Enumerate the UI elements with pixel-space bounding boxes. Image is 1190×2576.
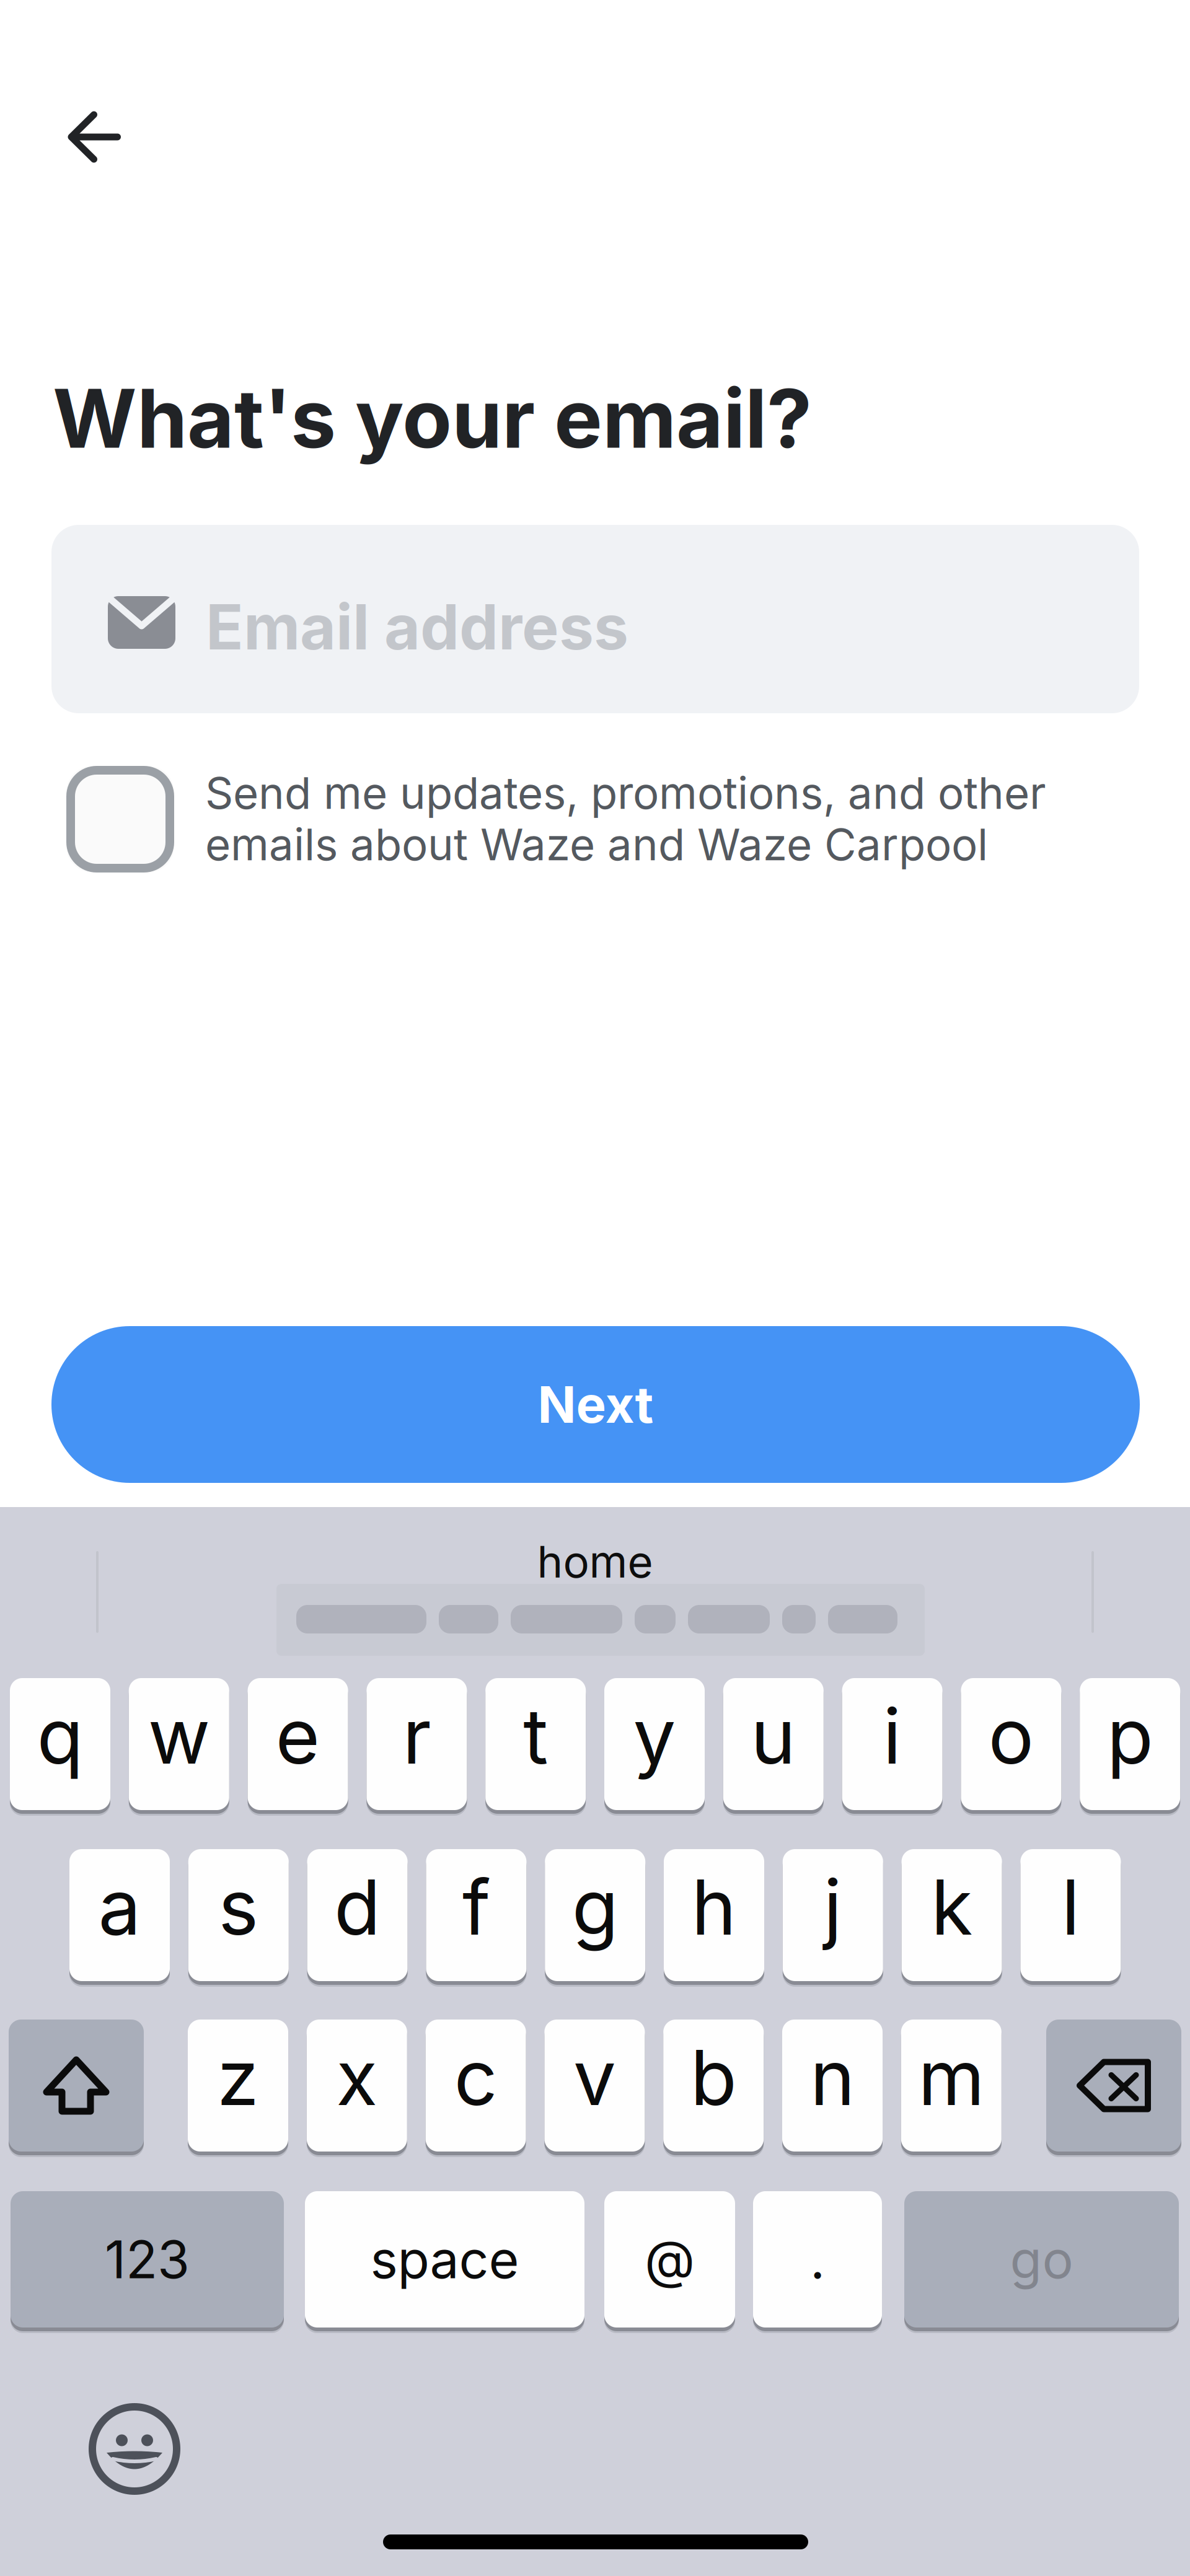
staticText: y [633,1690,676,1782]
button[interactable]: 123 [11,2191,284,2333]
button[interactable]: space [305,2191,584,2333]
staticText: a [98,1861,141,1953]
button[interactable]: z [188,2020,288,2157]
button[interactable]: Next [51,1326,1140,1483]
button[interactable]: e [248,1678,348,1816]
button[interactable]: r [367,1678,467,1816]
button[interactable]: a [69,1849,170,1987]
button[interactable]: l [1020,1849,1121,1987]
staticText: i [883,1690,902,1782]
button[interactable]: home [440,1524,750,1599]
staticText: g [572,1861,618,1953]
staticText: z [217,2031,259,2123]
button[interactable]: Shift [9,2020,144,2157]
staticText: home [537,1535,653,1588]
button[interactable]: n [782,2020,883,2157]
button[interactable]: i [842,1678,942,1816]
staticText: k [931,1861,973,1953]
staticText: m [918,2031,984,2123]
button[interactable]: p [1080,1678,1180,1816]
staticText: space [370,2228,519,2291]
staticText: l [1061,1861,1080,1953]
button[interactable]: w [129,1678,229,1816]
staticText: v [573,2031,616,2123]
button[interactable]: go [904,2191,1179,2333]
staticText: j [824,1861,842,1953]
button[interactable]: b [663,2020,764,2157]
button[interactable]: y [604,1678,705,1816]
button[interactable]: v [544,2020,645,2157]
button[interactable]: . [753,2191,882,2333]
staticText: h [691,1861,737,1953]
staticText: Send me updates, promotions, and other [205,766,1046,819]
staticText: p [1107,1690,1153,1782]
staticText: 123 [105,2228,190,2291]
staticText: n [810,2031,855,2123]
staticText: Email address [206,589,628,664]
staticText: go [1010,2228,1073,2291]
button[interactable]: j [783,1849,883,1987]
button[interactable]: Delete [1046,2020,1181,2157]
button[interactable]: s [188,1849,289,1987]
button[interactable]: u [723,1678,824,1816]
staticText: What's your email? [53,369,812,467]
staticText: c [454,2031,497,2123]
button[interactable]: o [961,1678,1061,1816]
button[interactable]: q [10,1678,110,1816]
staticText: b [690,2031,737,2123]
staticText: w [148,1690,210,1782]
staticText: s [218,1861,259,1953]
button[interactable]: k [902,1849,1002,1987]
button[interactable]: m [901,2020,1001,2157]
staticText: r [402,1690,431,1782]
staticText: d [334,1861,381,1953]
button[interactable]: @ [604,2191,735,2333]
staticText: . [810,2228,825,2291]
button[interactable]: g [545,1849,645,1987]
button[interactable]: x [307,2020,407,2157]
staticText: x [336,2031,378,2123]
staticText: q [37,1690,83,1782]
staticText: t [523,1690,548,1782]
button[interactable]: Back [26,69,162,205]
staticText: o [988,1690,1034,1782]
button[interactable]: h [664,1849,764,1987]
staticText: emails about Waze and Waze Carpool [205,818,988,871]
staticText: e [276,1690,320,1782]
button[interactable]: Send me updates, promotions, and other e… [66,766,174,873]
button[interactable]: t [485,1678,586,1816]
staticText: f [462,1861,490,1953]
staticText: Next [538,1374,654,1435]
button[interactable]: f [426,1849,526,1987]
staticText: u [751,1690,796,1782]
button[interactable]: Emoji keyboard [92,2406,177,2492]
button[interactable]: c [426,2020,526,2157]
button[interactable]: d [307,1849,408,1987]
staticText: @ [645,2228,695,2291]
